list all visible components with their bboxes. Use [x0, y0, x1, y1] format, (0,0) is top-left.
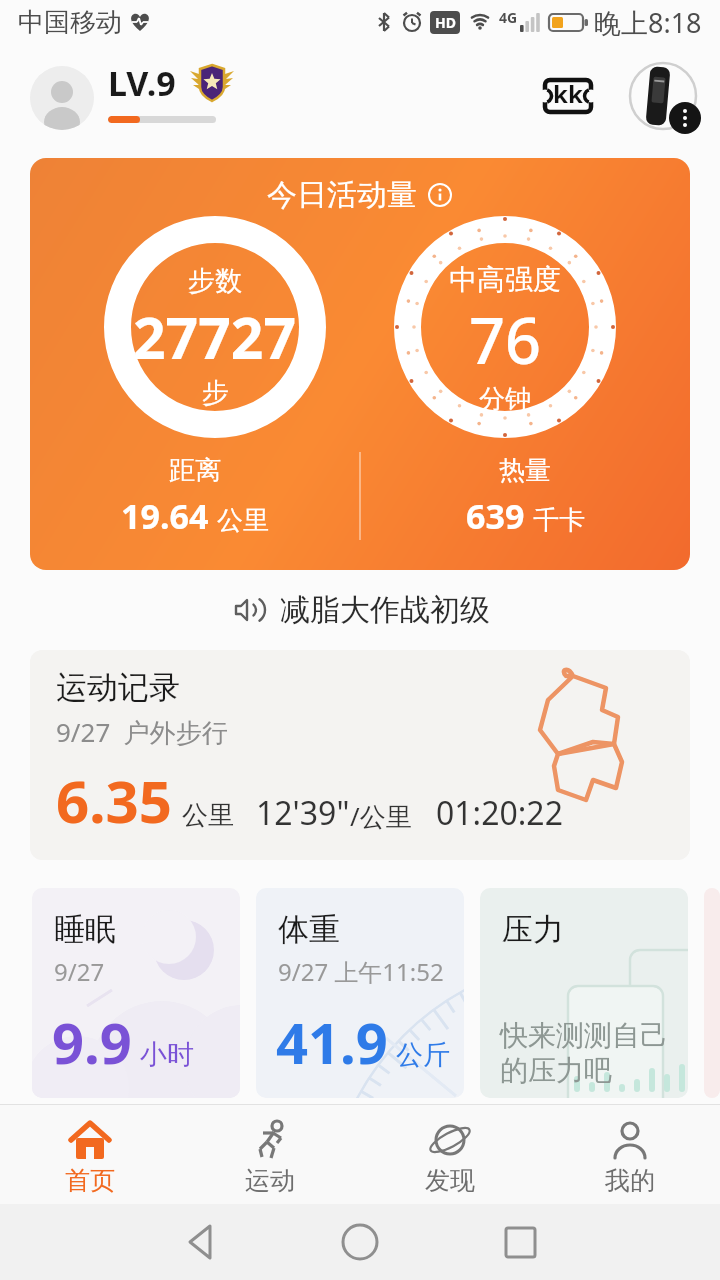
- button[interactable]: 减脂大作战初级: [0, 570, 720, 650]
- staticText: 76: [469, 297, 542, 383]
- staticText: 9/27 上午11:52: [278, 955, 444, 988]
- button[interactable]: [0, 1204, 240, 1280]
- staticText: 热量: [499, 454, 551, 487]
- staticText: 639: [466, 493, 525, 539]
- staticText: 今日活动量: [267, 176, 417, 214]
- button[interactable]: 体重: [256, 888, 464, 1098]
- staticText: 睡眠: [54, 910, 116, 949]
- staticText: 27727: [133, 298, 297, 376]
- staticText: 小时: [140, 1038, 194, 1072]
- staticText: 12'39": [256, 791, 350, 835]
- staticText: 的压力吧: [500, 1053, 612, 1088]
- staticText: 千卡: [533, 504, 585, 537]
- button[interactable]: 运动记录: [30, 650, 690, 860]
- staticText: 41.9: [276, 1004, 388, 1080]
- staticText: 公里: [182, 799, 234, 832]
- staticText: 体重: [278, 910, 340, 949]
- button[interactable]: 我的: [540, 1105, 720, 1204]
- staticText: 运动记录: [56, 668, 180, 707]
- staticText: 01:20:22: [436, 791, 563, 835]
- staticText: 快来测测自己: [500, 1018, 668, 1053]
- button[interactable]: [480, 1204, 720, 1280]
- staticText: 晚上8:18: [594, 4, 702, 41]
- button[interactable]: [240, 1204, 480, 1280]
- button[interactable]: LV.9: [108, 60, 234, 123]
- staticText: 中高强度: [449, 262, 561, 297]
- staticText: kk: [553, 77, 583, 110]
- staticText: 分钟: [479, 383, 531, 416]
- staticText: 9/27: [54, 955, 105, 988]
- staticText: 步数: [188, 264, 242, 298]
- button[interactable]: 发现: [360, 1105, 540, 1204]
- button[interactable]: 今日活动量: [30, 158, 690, 570]
- staticText: 发现: [425, 1165, 475, 1196]
- staticText: 运动: [245, 1165, 295, 1196]
- button[interactable]: [30, 66, 94, 130]
- staticText: 首页: [65, 1165, 115, 1196]
- button[interactable]: 首页: [0, 1105, 180, 1204]
- staticText: 我的: [605, 1165, 655, 1196]
- button[interactable]: [628, 61, 700, 133]
- staticText: 19.64: [121, 493, 209, 539]
- button[interactable]: kk: [543, 78, 593, 114]
- staticText: 步: [202, 376, 229, 410]
- button[interactable]: 运动: [180, 1105, 360, 1204]
- staticText: LV.9: [108, 60, 176, 106]
- staticText: /公里: [350, 798, 412, 834]
- button[interactable]: 压力: [480, 888, 688, 1098]
- staticText: 公里: [217, 504, 269, 537]
- staticText: 距离: [169, 454, 221, 487]
- staticText: 减脂大作战初级: [280, 591, 490, 629]
- staticText: HD: [435, 13, 456, 32]
- staticText: 9/27 户外步行: [56, 714, 228, 750]
- staticText: 公斤: [396, 1038, 450, 1072]
- staticText: 中国移动: [18, 6, 122, 39]
- staticText: 压力: [502, 910, 564, 949]
- staticText: 6.35: [56, 761, 172, 840]
- staticText: 9.9: [52, 1004, 132, 1080]
- staticText: 4G: [499, 8, 518, 27]
- button[interactable]: 睡眠: [32, 888, 240, 1098]
